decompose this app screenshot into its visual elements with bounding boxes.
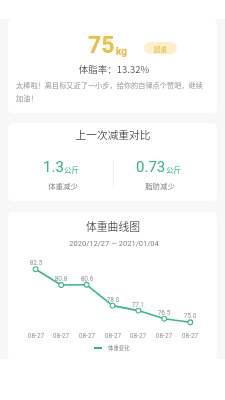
button[interactable]: 0.73 — [113, 158, 203, 176]
staticText: 08-27 — [175, 332, 205, 340]
button[interactable] — [8, 19, 217, 113]
staticText: 78.0 — [98, 296, 128, 304]
staticText: 82.5 — [21, 259, 51, 267]
staticText: 75 — [88, 32, 115, 59]
staticText: 08-27 — [98, 332, 128, 340]
staticText: 体脂率：13.32% — [24, 62, 204, 76]
button[interactable] — [8, 212, 217, 360]
staticText: 08-27 — [46, 332, 76, 340]
staticText: 2020/12/27 — 2021/01/04 — [29, 239, 199, 248]
staticText: 公斤 — [166, 164, 181, 175]
staticText: 08-27 — [21, 332, 51, 340]
button[interactable]: 体重变化 — [94, 343, 130, 353]
staticText: 75.0 — [175, 312, 205, 320]
staticText: 体重减少 — [28, 180, 98, 191]
staticText: 08-27 — [72, 332, 102, 340]
button[interactable] — [8, 123, 217, 201]
staticText: 08-27 — [149, 332, 179, 340]
staticText: 1.3 — [43, 158, 64, 176]
staticText: kg — [116, 46, 127, 58]
staticText: 上一次减重对比 — [33, 127, 193, 142]
staticText: 08-27 — [123, 332, 153, 340]
staticText: 公斤 — [64, 164, 79, 175]
staticText: 脂肪减少 — [125, 180, 195, 191]
button[interactable]: 超重 — [144, 42, 177, 54]
staticText: 体重曲线图 — [33, 218, 193, 234]
staticText: 76.5 — [149, 309, 179, 317]
staticText: 80.8 — [46, 275, 76, 283]
staticText: 体重变化 — [108, 344, 130, 352]
staticText: 太棒啦！离目标又近了一小步，给你的自律点个赞吧，继续加油！ — [16, 80, 210, 103]
button[interactable]: 1.3 — [16, 158, 106, 176]
staticText: 0.73 — [136, 158, 166, 176]
staticText: 77.1 — [123, 301, 153, 309]
staticText: 80.6 — [72, 275, 102, 283]
staticText: 超重 — [154, 44, 167, 53]
